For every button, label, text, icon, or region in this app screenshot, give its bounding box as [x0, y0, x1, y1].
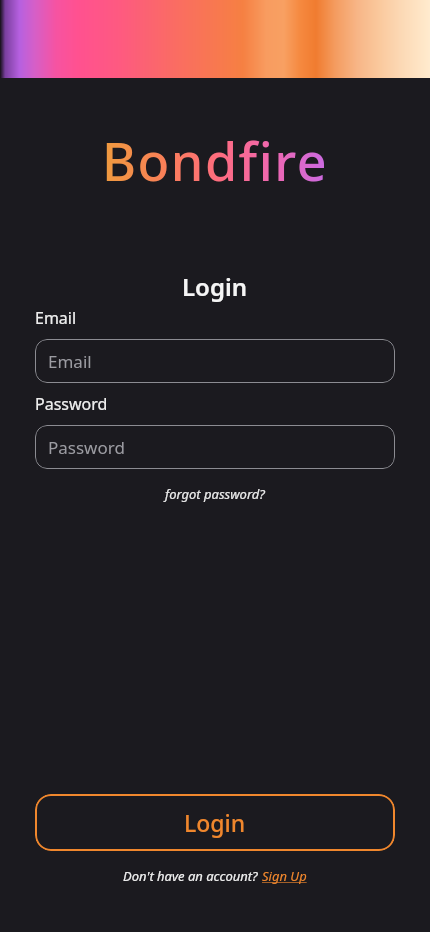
staticText: Don't have an account? — [123, 867, 262, 885]
staticText: Bondfire — [102, 125, 329, 196]
button[interactable]: Sign Up — [262, 867, 307, 885]
button[interactable]: Login — [35, 794, 395, 851]
staticText: Password — [48, 436, 125, 459]
staticText: Email — [35, 307, 77, 329]
button[interactable]: Password — [35, 425, 395, 469]
button[interactable]: Email — [35, 339, 395, 383]
staticText: Password — [35, 393, 108, 415]
staticText: Login — [182, 270, 248, 303]
button[interactable]: forgot password? — [165, 485, 265, 503]
staticText: Email — [48, 350, 92, 373]
staticText: Login — [184, 807, 246, 838]
